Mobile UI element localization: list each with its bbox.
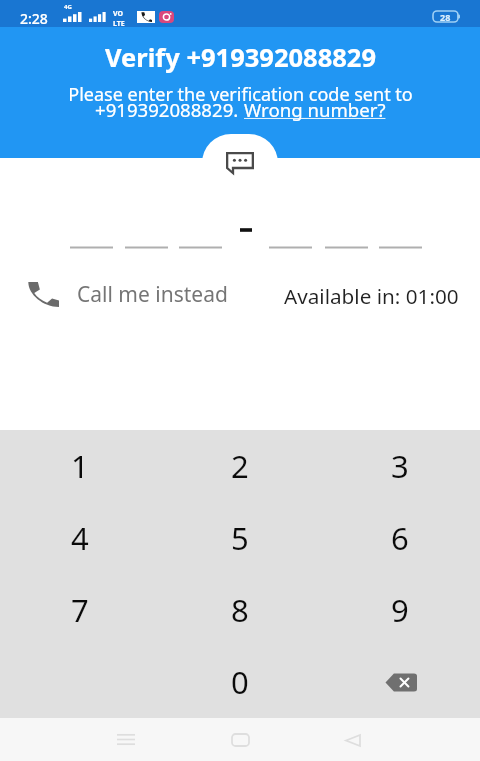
button[interactable]: 6 bbox=[320, 502, 480, 574]
staticText: 4G bbox=[64, 3, 72, 11]
staticText: 0 bbox=[231, 661, 249, 703]
staticText: 1 bbox=[71, 445, 89, 487]
button[interactable]: Wrong number? bbox=[244, 97, 386, 122]
staticText: 3 bbox=[391, 445, 409, 487]
button[interactable]: 4 bbox=[0, 502, 160, 574]
button[interactable]: 0 bbox=[160, 646, 320, 718]
staticText: Call me instead bbox=[77, 280, 228, 309]
staticText: 2:28 bbox=[20, 9, 48, 28]
staticText: Please enter the verification code sent … bbox=[68, 82, 413, 107]
staticText: 5 bbox=[231, 517, 249, 559]
staticText: 7 bbox=[71, 589, 89, 631]
button[interactable]: 1 bbox=[0, 430, 160, 502]
button[interactable]: Home bbox=[215, 719, 265, 760]
button[interactable]: 3 bbox=[320, 430, 480, 502]
button[interactable]: Back bbox=[328, 720, 378, 761]
staticText: 4 bbox=[71, 517, 89, 559]
button[interactable]: 8 bbox=[160, 574, 320, 646]
staticText: VO bbox=[113, 9, 124, 19]
staticText: Available in: 01:00 bbox=[284, 282, 459, 310]
other: Backspace bbox=[384, 673, 417, 692]
staticText: 8 bbox=[231, 589, 249, 631]
staticText: 6 bbox=[391, 517, 409, 559]
staticText: 2 bbox=[231, 445, 249, 487]
button[interactable]: 5 bbox=[160, 502, 320, 574]
button[interactable]: Backspace bbox=[320, 646, 480, 718]
button[interactable]: 9 bbox=[320, 574, 480, 646]
staticText: 9 bbox=[391, 589, 409, 631]
staticText: Verify +919392088829 bbox=[105, 40, 376, 75]
button[interactable]: 2 bbox=[160, 430, 320, 502]
staticText: LTE bbox=[113, 19, 125, 29]
staticText: 28 bbox=[440, 11, 451, 22]
button[interactable]: Recent apps bbox=[101, 719, 151, 760]
button[interactable]: 7 bbox=[0, 574, 160, 646]
button[interactable]: Call me instead bbox=[26, 280, 228, 309]
staticText: +919392088829. bbox=[95, 97, 244, 122]
